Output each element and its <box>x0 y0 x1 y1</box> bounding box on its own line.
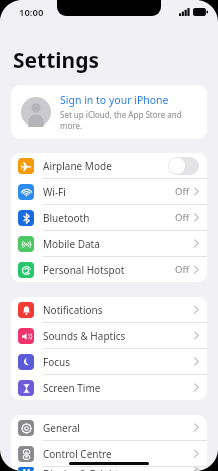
button[interactable]: General <box>11 415 207 441</box>
staticText: General <box>43 421 194 435</box>
button[interactable]: Wi-Fi <box>11 179 207 205</box>
staticText: Bluetooth <box>43 211 175 225</box>
staticText: AA <box>22 467 31 471</box>
staticText: Off <box>175 211 189 224</box>
button[interactable]: Airplane Mode <box>11 153 207 179</box>
button[interactable]: Mobile Data <box>11 231 207 257</box>
button[interactable]: Control Centre <box>11 441 207 467</box>
button[interactable]: Sounds & Haptics <box>11 323 207 349</box>
staticText: Airplane Mode <box>43 159 168 173</box>
button[interactable]: Focus <box>11 349 207 375</box>
staticText: Focus <box>43 355 194 369</box>
button[interactable]: Airplane Mode toggle <box>168 157 199 175</box>
staticText: Screen Time <box>43 381 194 395</box>
button[interactable]: Sign in to your iPhone <box>11 85 207 139</box>
staticText: Off <box>175 185 189 198</box>
button[interactable]: Notifications <box>11 297 207 323</box>
staticText: Control Centre <box>43 447 194 461</box>
staticText: Wi-Fi <box>43 185 175 199</box>
staticText: Mobile Data <box>43 237 194 251</box>
staticText: 10:00 <box>19 6 44 19</box>
button[interactable]: AA <box>11 467 207 471</box>
staticText: Personal Hotspot <box>43 263 175 277</box>
staticText: Settings <box>13 46 100 75</box>
staticText: Sign in to your iPhone <box>60 93 169 107</box>
button[interactable]: Screen Time <box>11 375 207 400</box>
staticText: Set up iCloud, the App Store and more. <box>60 109 197 131</box>
staticText: Off <box>175 263 189 276</box>
button[interactable]: Bluetooth <box>11 205 207 231</box>
staticText: Display & Brightness <box>43 467 194 471</box>
staticText: Sounds & Haptics <box>43 329 194 343</box>
staticText: Notifications <box>43 303 194 317</box>
button[interactable]: Personal Hotspot <box>11 257 207 282</box>
